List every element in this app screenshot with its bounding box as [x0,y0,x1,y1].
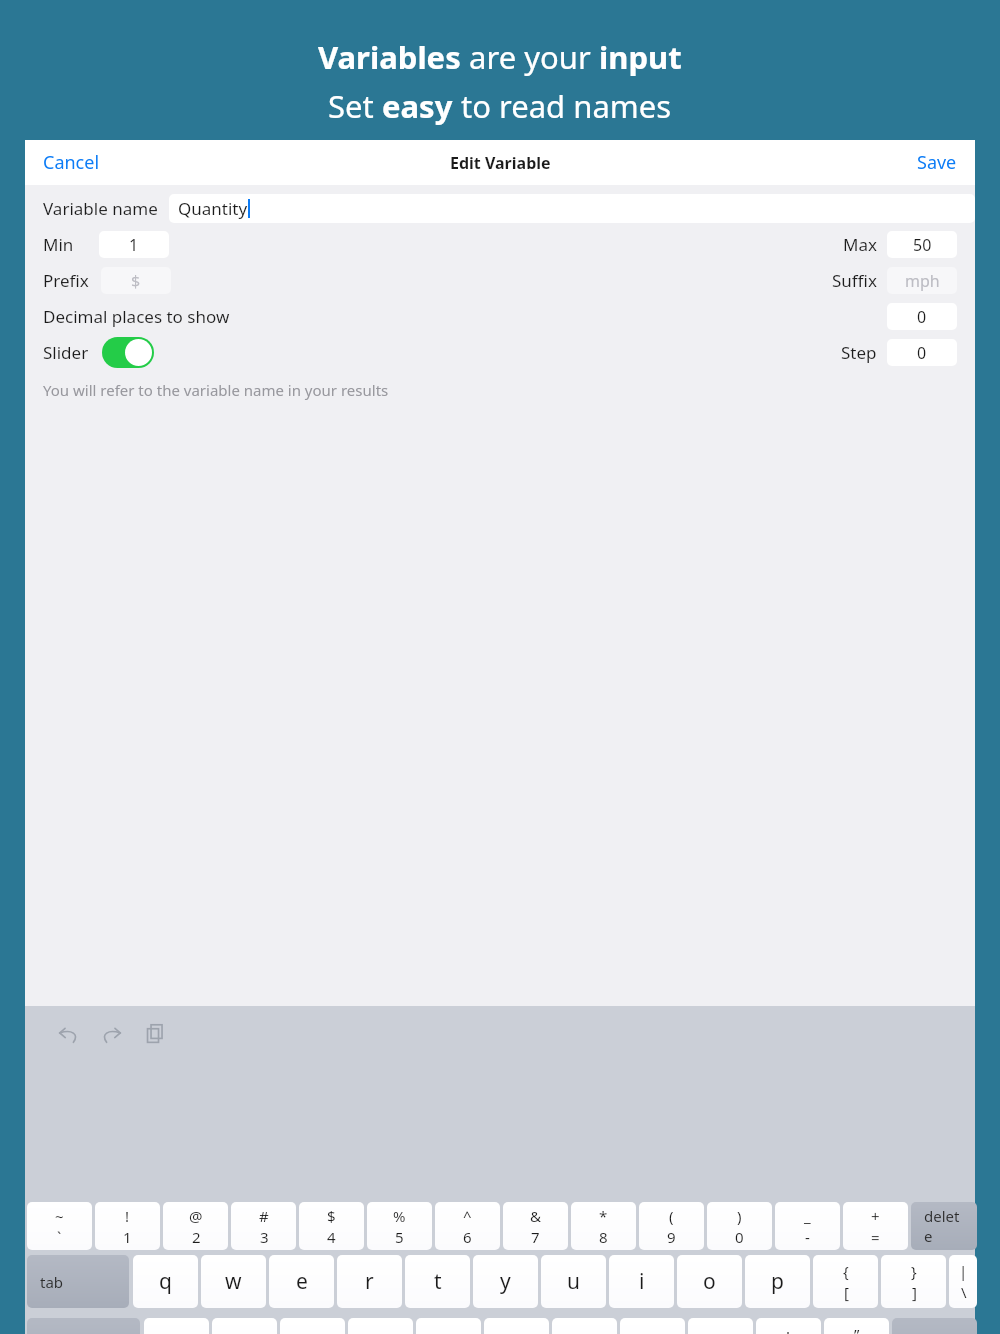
button[interactable]: * [571,1202,636,1250]
button[interactable]: $ [299,1202,364,1250]
button[interactable]: y [473,1255,538,1308]
button[interactable]: % [367,1202,432,1250]
staticText: w [225,1267,242,1296]
button[interactable]: Slider enabled [102,337,154,368]
staticText: Variable name [43,197,158,220]
staticText: Edit Variable [450,152,551,174]
staticText: + [871,1206,880,1226]
staticText: \ [961,1282,967,1302]
staticText: & [530,1206,541,1226]
button[interactable]: e [269,1255,334,1308]
staticText: Variables [318,36,461,78]
staticText: Decimal places to show [43,305,230,328]
button[interactable]: s [212,1318,277,1334]
staticText: tab [40,1272,64,1292]
button[interactable]: r [337,1255,402,1308]
button[interactable]: 1 [99,231,169,258]
staticText: _ [804,1206,811,1226]
button[interactable]: w [201,1255,266,1308]
button[interactable]: j [552,1318,617,1334]
staticText: delete [924,1206,964,1246]
button[interactable]: 0 [887,339,957,366]
button[interactable]: Save [899,142,975,183]
button[interactable]: _ [775,1202,840,1250]
staticText: ” [854,1324,860,1334]
button[interactable]: & [503,1202,568,1250]
staticText: You will refer to the variable name in y… [43,380,389,400]
button[interactable]: i [609,1255,674,1308]
staticText: ) [737,1206,742,1226]
staticText: y [500,1267,511,1296]
button[interactable]: Cancel [25,142,118,183]
button[interactable]: o [677,1255,742,1308]
staticText: Save [917,150,957,175]
button[interactable]: : [756,1318,821,1334]
button[interactable]: Quantity [169,194,975,223]
staticText: 9 [667,1227,676,1247]
staticText: are your [461,36,599,78]
staticText: # [259,1206,269,1226]
button[interactable]: + [843,1202,908,1250]
button[interactable]: ! [95,1202,160,1250]
staticText: Min [43,233,74,256]
staticText: 2 [192,1227,201,1247]
staticText: to read names [453,85,672,127]
button[interactable]: a [144,1318,209,1334]
staticText: | [959,1261,968,1281]
staticText: 5 [395,1227,404,1247]
button[interactable]: $ [101,267,171,294]
button[interactable]: 0 [887,303,957,330]
staticText: 1 [129,234,139,256]
button[interactable]: Paste [137,1016,173,1052]
staticText: 0 [917,306,927,328]
button[interactable]: q [133,1255,198,1308]
staticText: @ [189,1206,203,1226]
staticText: 4 [327,1227,336,1247]
button[interactable]: 50 [887,231,957,258]
button[interactable]: l [688,1318,753,1334]
staticText: easy [382,85,453,127]
button[interactable]: ^ [435,1202,500,1250]
button[interactable]: tab [27,1255,129,1308]
button[interactable]: ( [639,1202,704,1250]
staticText: Step [841,341,877,364]
staticText: e [296,1267,308,1296]
staticText: Cancel [43,150,100,175]
staticText: ~ [55,1206,64,1226]
button[interactable]: d [280,1318,345,1334]
button[interactable]: Undo [51,1016,87,1052]
staticText: * [599,1206,608,1226]
button[interactable]: t [405,1255,470,1308]
staticText: i [639,1267,645,1296]
button[interactable]: ) [707,1202,772,1250]
staticText: t [434,1267,442,1296]
button[interactable]: h [484,1318,549,1334]
button[interactable]: { [813,1255,878,1308]
staticText: - [805,1227,810,1247]
button[interactable]: next [892,1318,977,1334]
button[interactable]: delete [911,1202,977,1250]
staticText: ] [912,1282,917,1302]
staticText: $ [131,270,141,292]
button[interactable]: f [348,1318,413,1334]
button[interactable]: ” [824,1318,889,1334]
button[interactable]: g [416,1318,481,1334]
button[interactable]: k [620,1318,685,1334]
staticText: Slider [43,341,89,364]
button[interactable]: # [231,1202,296,1250]
button[interactable]: } [881,1255,946,1308]
button[interactable]: | [949,1255,977,1308]
staticText: Set [328,85,382,127]
button[interactable]: ~ [27,1202,92,1250]
button[interactable]: @ [163,1202,228,1250]
button[interactable]: Redo [93,1016,129,1052]
staticText: r [365,1267,374,1296]
staticText: 3 [260,1227,269,1247]
button[interactable]: p [745,1255,810,1308]
button[interactable]: mph [887,267,957,294]
button[interactable]: u [541,1255,606,1308]
staticText: 0 [917,342,927,364]
